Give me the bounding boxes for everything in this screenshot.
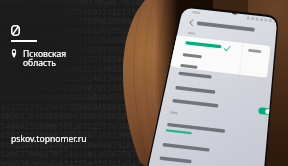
staticText: 615768876861823282873739532005 [0,43,146,55]
button[interactable]: Topnomer logo [11,25,20,36]
staticText: 300908336802865191791515440042 [0,52,146,64]
staticText: 552374266975172317852968889638 [0,33,146,45]
staticText: 751402215614578750893731213574 [0,5,146,17]
staticText: 663122453597812136248138417743 [0,71,146,83]
staticText: 103052095085976634369316206466 [0,109,146,121]
staticText: 643566920200916824601045317987 [0,90,146,102]
staticText: 987512680317319196079133877878 [0,81,146,93]
staticText: 321515226616297756644927834558 [0,24,146,36]
staticText: 163895112503486890770509786109 [0,0,146,7]
staticText: Псковская область [23,48,67,69]
button[interactable]: Псковская область [11,48,67,69]
staticText: 918228061614024414066647518737 [0,138,146,150]
staticText: 420751519300367555672633390400 [0,128,146,140]
staticText: 443352376254472550504588456137 [0,100,146,112]
staticText: 761355008317057677876835894228 [0,14,146,26]
staticText: 560639209646074775937834148422 [0,157,146,166]
staticText: pskov.topnomer.ru [11,133,87,145]
staticText: 825359311770319981518493553410 [0,62,146,74]
staticText: 740492520909565207821776348729 [0,119,146,131]
staticText: 320677906679534838014956774765 [0,147,146,159]
